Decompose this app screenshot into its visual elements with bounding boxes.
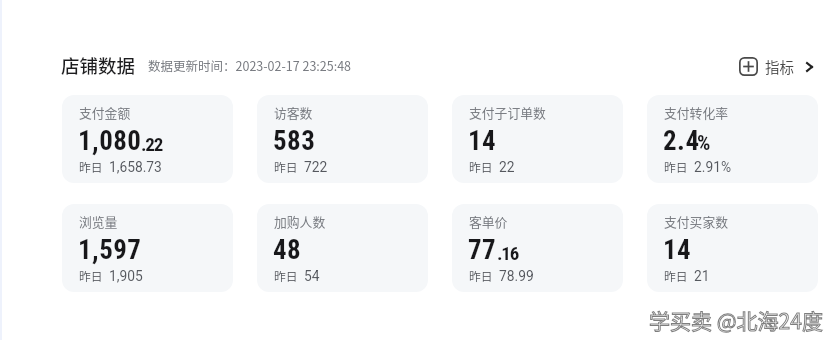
- button[interactable]: 支付转化率: [647, 95, 818, 183]
- staticText: 2.91%: [694, 159, 732, 175]
- staticText: 昨日: [469, 158, 493, 175]
- staticText: 14: [663, 234, 692, 266]
- staticText: .16: [497, 242, 519, 264]
- staticText: 支付子订单数: [469, 103, 546, 122]
- other: More: [806, 62, 813, 72]
- staticText: 78.99: [499, 268, 534, 284]
- staticText: 48: [273, 234, 302, 266]
- staticText: 加购人数: [274, 212, 326, 231]
- button[interactable]: 加购人数: [257, 204, 428, 292]
- staticText: 昨日: [664, 158, 688, 175]
- button[interactable]: 支付买家数: [647, 204, 818, 292]
- staticText: 客单价: [469, 212, 508, 231]
- staticText: 昨日: [274, 267, 298, 284]
- staticText: 访客数: [274, 103, 313, 122]
- staticText: 昨日: [79, 158, 103, 175]
- staticText: 583: [273, 125, 316, 157]
- staticText: 1,658.73: [109, 159, 162, 175]
- staticText: 支付转化率: [664, 103, 728, 122]
- staticText: 22: [499, 159, 515, 175]
- staticText: 1,905: [109, 268, 143, 284]
- button[interactable]: 支付子订单数: [452, 95, 623, 183]
- staticText: 722: [304, 159, 328, 175]
- staticText: 昨日: [664, 267, 688, 284]
- staticText: 浏览量: [79, 212, 118, 231]
- staticText: 14: [468, 125, 497, 157]
- staticText: 昨日: [469, 267, 493, 284]
- button[interactable]: 客单价: [452, 204, 623, 292]
- staticText: 1,597: [78, 234, 142, 266]
- staticText: %: [697, 131, 710, 156]
- staticText: 支付买家数: [664, 212, 728, 231]
- staticText: 1,080: [78, 125, 142, 157]
- staticText: .22: [141, 133, 163, 155]
- button[interactable]: 浏览量: [62, 204, 233, 292]
- staticText: 2.4: [663, 125, 700, 157]
- staticText: 54: [304, 268, 320, 284]
- staticText: 昨日: [79, 267, 103, 284]
- staticText: 21: [694, 268, 710, 284]
- staticText: 指标: [765, 56, 794, 77]
- staticText: 学买卖 @北海24度: [649, 305, 823, 335]
- staticText: 昨日: [274, 158, 298, 175]
- staticText: 77: [468, 234, 497, 266]
- staticText: 支付金额: [79, 103, 131, 122]
- staticText: 店铺数据: [61, 52, 136, 79]
- other: Add metric: [739, 57, 758, 76]
- staticText: 数据更新时间：2023-02-17 23:25:48: [148, 56, 352, 74]
- button[interactable]: Add metric: [735, 52, 817, 81]
- button[interactable]: 支付金额: [62, 95, 233, 183]
- button[interactable]: 访客数: [257, 95, 428, 183]
